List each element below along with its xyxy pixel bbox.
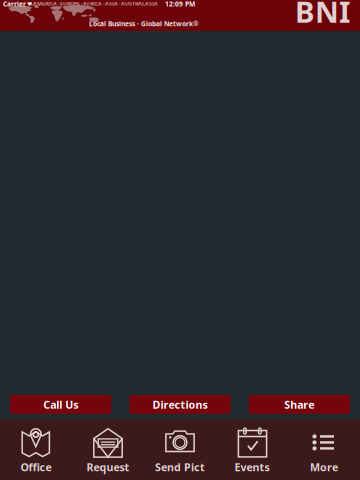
- staticText: Share: [284, 397, 314, 412]
- button[interactable]: Events: [216, 419, 288, 480]
- staticText: Call Us: [43, 397, 78, 412]
- staticText: Directions: [152, 397, 207, 412]
- staticText: N.AMERICA · EUROPE · AFRICA · ASIA · AUS…: [28, 0, 158, 7]
- staticText: 12:09 PM: [165, 0, 195, 8]
- staticText: Carrier: [3, 0, 26, 8]
- staticText: Office: [20, 460, 51, 474]
- staticText: Events: [234, 460, 269, 474]
- button[interactable]: Directions: [129, 395, 231, 414]
- staticText: Request: [86, 460, 129, 474]
- button[interactable]: More: [288, 419, 360, 480]
- staticText: Send Pict: [155, 460, 205, 474]
- button[interactable]: Call Us: [10, 395, 111, 414]
- button[interactable]: Share: [249, 395, 350, 414]
- staticText: More: [310, 460, 338, 474]
- button[interactable]: Request: [72, 419, 144, 480]
- staticText: Local Business · Global Network®: [89, 19, 199, 28]
- staticText: BNI: [295, 0, 350, 31]
- button[interactable]: Office: [0, 419, 72, 480]
- button[interactable]: Send Pict: [144, 419, 216, 480]
